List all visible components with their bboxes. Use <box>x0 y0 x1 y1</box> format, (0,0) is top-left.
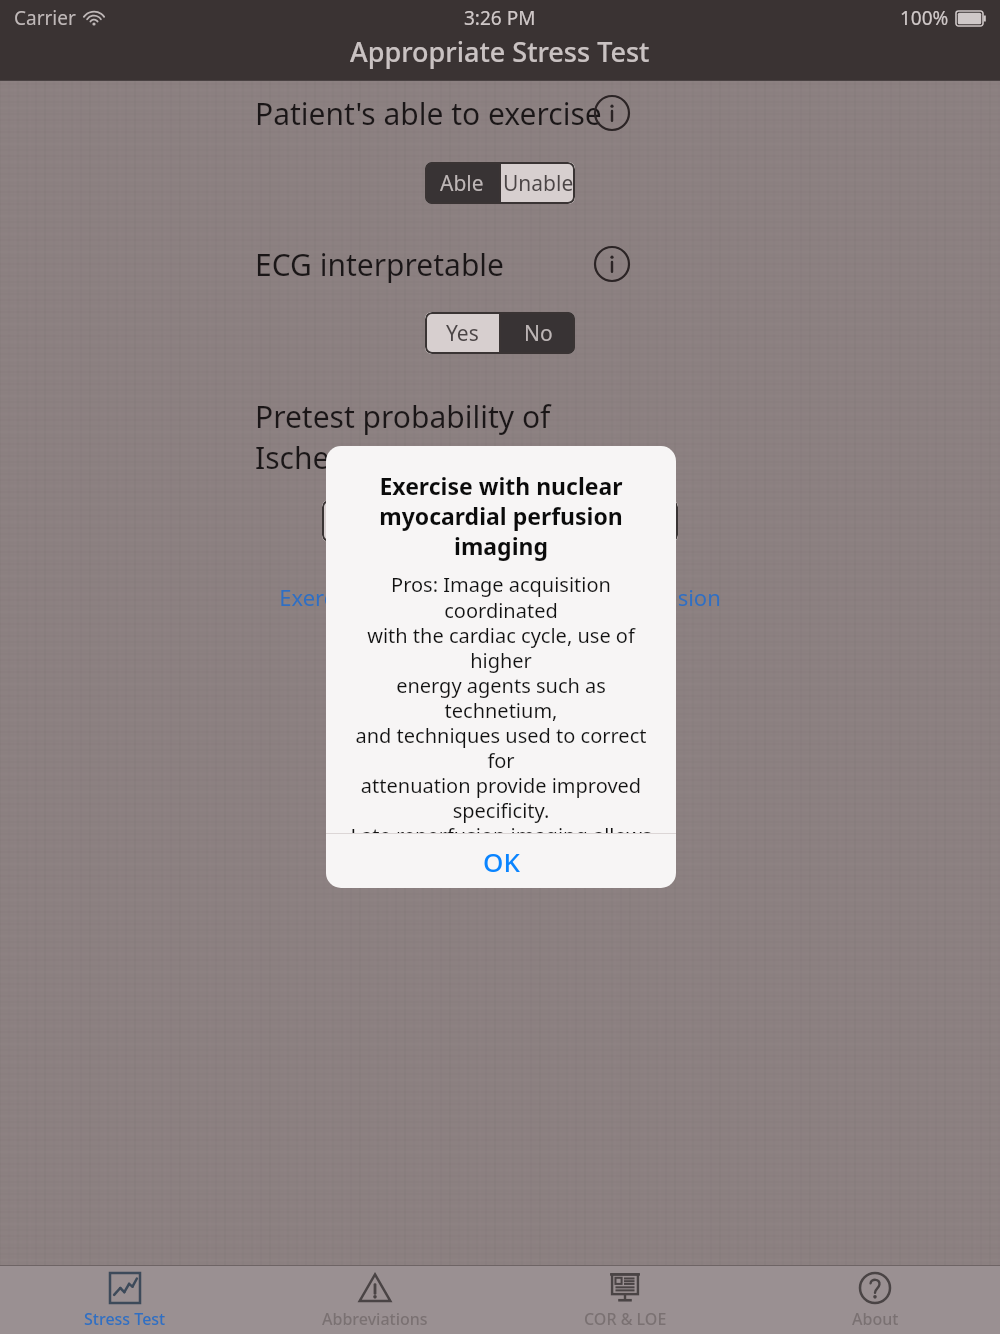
button[interactable]: Info about ECG interpretability <box>592 244 632 284</box>
staticText: Low <box>361 507 401 536</box>
button[interactable]: About <box>750 1266 1000 1334</box>
staticText: OK <box>483 844 520 879</box>
staticText: Yes <box>446 319 479 348</box>
button[interactable]: Stress Test <box>0 1266 250 1334</box>
button[interactable]: Intermediate <box>442 500 559 542</box>
button[interactable]: Unable <box>501 162 575 204</box>
button[interactable]: OK <box>326 834 676 888</box>
button[interactable]: Yes <box>425 312 499 354</box>
button[interactable]: High <box>561 500 678 542</box>
staticText: No <box>524 319 553 348</box>
button[interactable]: Able <box>425 162 499 204</box>
staticText: COR & LOE <box>584 1308 667 1330</box>
staticText: High <box>596 507 643 536</box>
staticText: Unable <box>503 169 574 198</box>
button[interactable]: Low <box>322 500 440 542</box>
staticText: Pretest probability of <box>255 396 551 437</box>
staticText: Patient's able to exercise <box>255 93 602 134</box>
button[interactable]: Info about ability to exercise <box>592 93 632 133</box>
staticText: 100% <box>900 5 949 31</box>
staticText: Ischemia <box>255 437 383 478</box>
staticText: ECG interpretable <box>255 244 505 285</box>
staticText: Able <box>440 169 484 198</box>
staticText: Exercise with nuclear myocardial perfusi… <box>342 470 660 561</box>
staticText: Intermediate <box>442 500 559 542</box>
button[interactable]: COR & LOE <box>500 1266 750 1334</box>
staticText: Abbreviations <box>322 1308 428 1330</box>
button[interactable]: Exercise with nuclear myocardial perfusi… <box>272 582 728 642</box>
staticText: Carrier <box>14 5 76 31</box>
staticText: Appropriate Stress Test <box>350 33 650 70</box>
staticText: Pros: Image acquisition coordinated with… <box>342 571 660 833</box>
staticText: About <box>852 1308 899 1330</box>
button[interactable]: No <box>501 312 575 354</box>
button[interactable]: Abbreviations <box>250 1266 500 1334</box>
staticText: 3:26 PM <box>464 5 536 31</box>
staticText: Stress Test <box>84 1308 166 1330</box>
